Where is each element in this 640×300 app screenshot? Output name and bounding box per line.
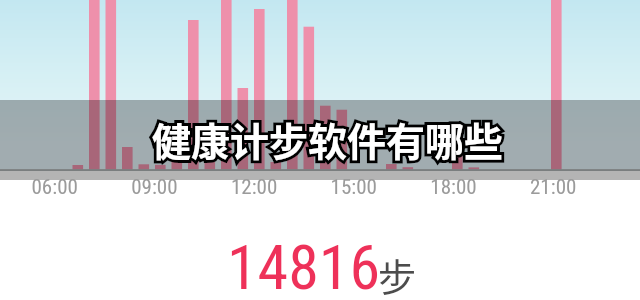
button[interactable] [0, 0, 640, 300]
